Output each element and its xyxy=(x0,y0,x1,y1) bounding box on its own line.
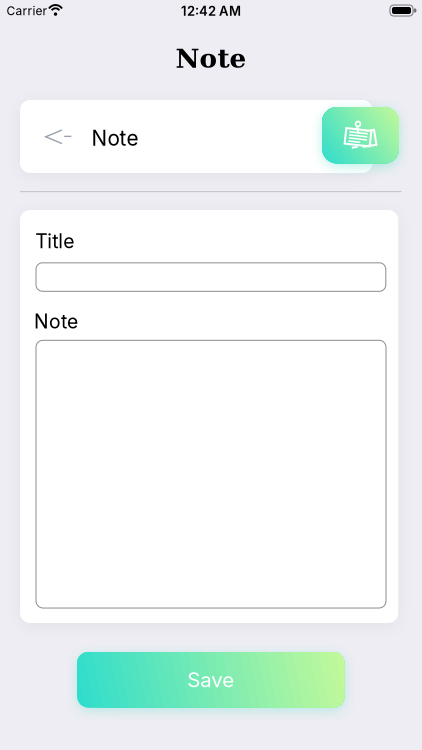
button[interactable]: Save xyxy=(77,652,344,707)
button[interactable]: Note xyxy=(36,340,386,608)
button[interactable]: Notes xyxy=(322,107,399,163)
staticText: Note xyxy=(175,43,246,74)
staticText: Save xyxy=(187,667,234,692)
button[interactable]: Title xyxy=(36,263,386,291)
staticText: Note xyxy=(34,310,78,333)
staticText: Title xyxy=(35,229,74,253)
staticText: Carrier xyxy=(6,4,47,18)
button[interactable]: Back xyxy=(39,122,78,152)
staticText: 12:42 AM xyxy=(181,3,241,19)
staticText: Note xyxy=(91,125,138,151)
